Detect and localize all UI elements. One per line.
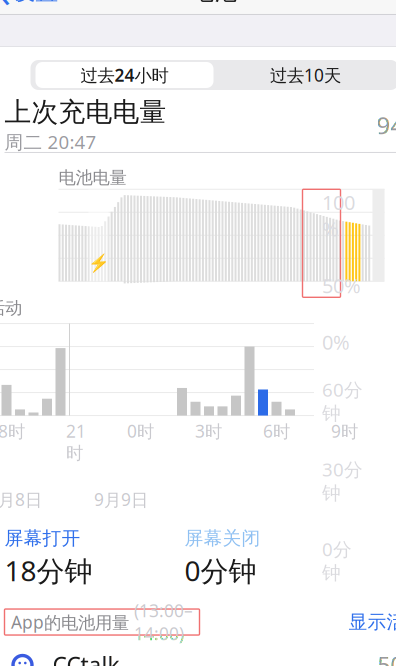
staticText: 60分钟	[322, 377, 363, 425]
staticText: ⚡	[87, 253, 109, 273]
staticText: 过去10天	[270, 63, 341, 86]
staticText: 50%	[377, 650, 396, 666]
staticText: 18分钟	[4, 552, 92, 589]
staticText: 9月8日	[0, 488, 42, 511]
staticText: 3时	[195, 420, 222, 443]
staticText: 屏幕关闭	[184, 527, 260, 550]
staticText: 6时	[263, 420, 290, 443]
staticText: ‹	[0, 0, 10, 18]
staticText: CCtalk	[52, 650, 119, 666]
staticText: 0分钟	[184, 552, 256, 589]
staticText: 9月9日	[94, 488, 148, 511]
staticText: 电池电量	[58, 167, 126, 188]
staticText: 活动	[0, 297, 22, 319]
staticText: 50%	[322, 272, 361, 299]
staticText: 电池	[191, 0, 237, 6]
staticText: 94%	[376, 109, 396, 141]
staticText: 上次充电电量	[4, 96, 166, 128]
button[interactable]: 显示活动	[340, 609, 396, 635]
staticText: 显示活动	[348, 611, 396, 633]
staticText: 21时	[66, 420, 86, 464]
button[interactable]: ‹	[0, 0, 64, 12]
staticText: 9时	[331, 420, 358, 443]
staticText: App的电池用量	[11, 610, 134, 634]
staticText: 30分钟	[322, 457, 363, 505]
button[interactable]: 过去24小时	[33, 62, 215, 88]
staticText: 周二 20:47	[4, 129, 96, 154]
staticText: 18时	[0, 420, 25, 443]
staticText: 100%	[322, 189, 355, 242]
staticText: (13:00–14:00)	[134, 599, 193, 645]
staticText: 0时	[127, 420, 154, 443]
staticText: 屏幕打开	[4, 527, 80, 550]
button[interactable]: CCtalk	[0, 643, 396, 666]
staticText: 设置	[12, 0, 58, 6]
button[interactable]: 过去10天	[215, 61, 395, 89]
staticText: 0分钟	[322, 537, 352, 584]
staticText: 0%	[322, 329, 350, 355]
staticText: 过去24小时	[80, 63, 168, 86]
